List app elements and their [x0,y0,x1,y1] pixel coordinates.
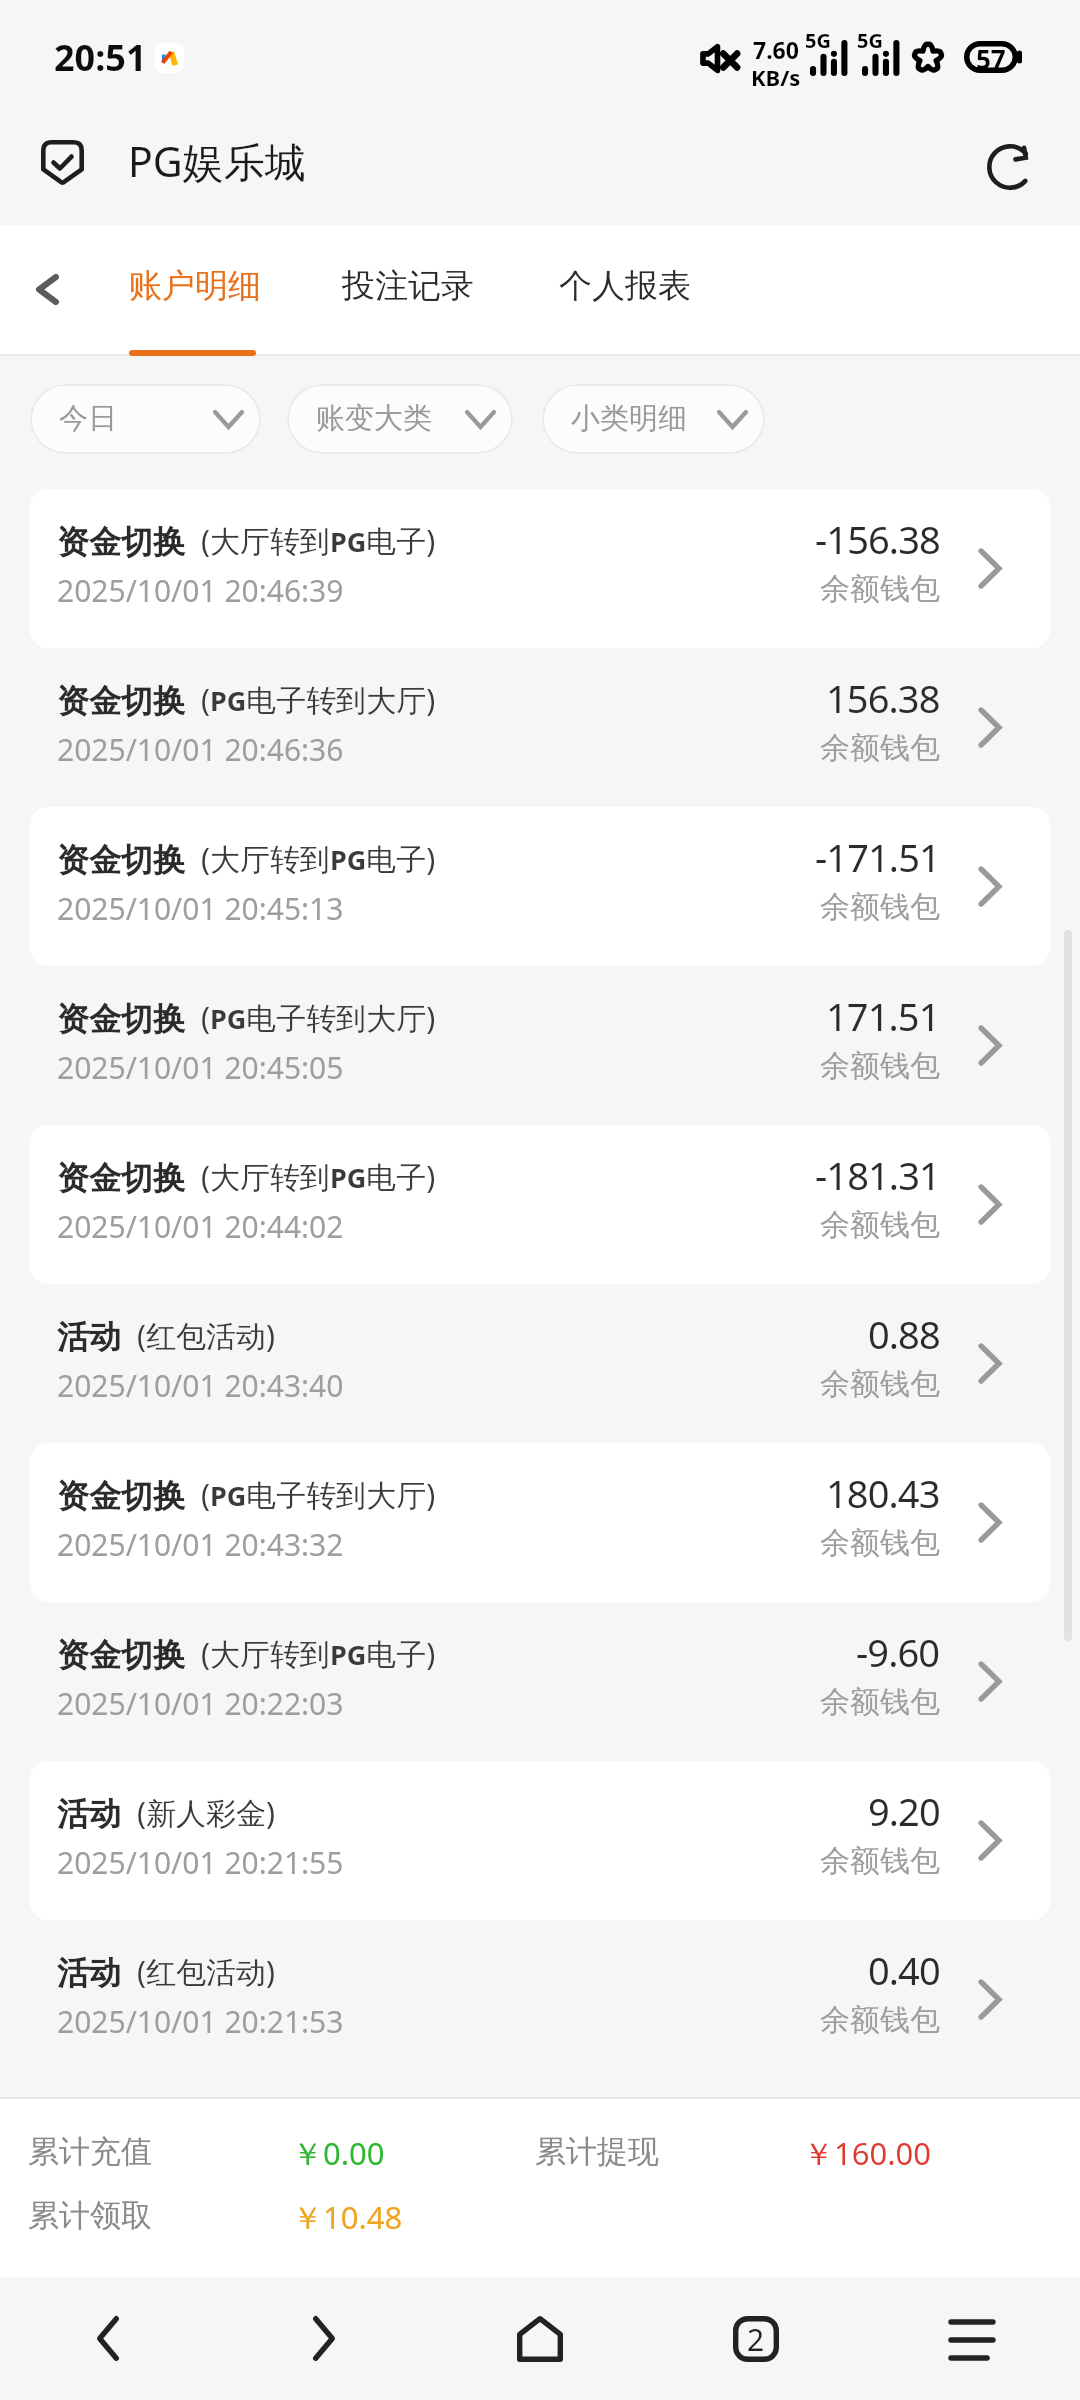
staticText: (新人彩金) [137,1792,275,1833]
staticText: (红包活动) [137,1315,275,1356]
staticText: 余额钱包 [820,888,940,926]
staticText: 2025/10/01 20:43:40 [57,1365,344,1406]
staticText: 余额钱包 [820,1683,940,1721]
staticText: 20:51 [54,33,147,82]
staticText: 活动 [57,1953,121,1993]
button[interactable]: 账变大类 [287,384,513,454]
staticText: 资金切换 [57,522,185,562]
staticText: 累计提现 [535,2132,659,2171]
button[interactable]: Home [432,2277,648,2400]
button[interactable]: 资金切换 [30,648,1050,807]
staticText: 2025/10/01 20:21:55 [57,1842,344,1883]
staticText: 资金切换 [57,681,185,721]
staticText: (PG电子转到大厅) [201,1474,436,1515]
staticText: 5G [857,27,883,54]
button[interactable]: Forward [216,2277,432,2400]
staticText: 资金切换 [57,840,185,880]
staticText: 活动 [57,1794,121,1834]
staticText: 180.43 [826,1467,940,1519]
staticText: 156.38 [826,672,940,724]
staticText: 活动 [57,1317,121,1357]
button[interactable]: 个人报表 [559,225,699,351]
staticText: 投注记录 [342,265,474,307]
staticText: 资金切换 [57,1635,185,1675]
button[interactable]: 活动 [30,1761,1050,1920]
staticText: 2025/10/01 20:46:39 [57,570,344,611]
staticText: ￥160.00 [803,2132,931,2174]
staticText: (大厅转到PG电子) [201,1156,436,1197]
staticText: 2025/10/01 20:44:02 [57,1206,344,1247]
button[interactable]: 资金切换 [30,1443,1050,1602]
staticText: (PG电子转到大厅) [201,679,436,720]
button[interactable]: 投注记录 [342,225,482,351]
staticText: (大厅转到PG电子) [201,1633,436,1674]
staticText: -9.60 [856,1626,940,1678]
staticText: (PG电子转到大厅) [201,997,436,1038]
button[interactable]: 账户明细 [129,225,269,351]
staticText: -171.51 [815,831,940,883]
staticText: 余额钱包 [820,1206,940,1244]
staticText: (红包活动) [137,1951,275,1992]
staticText: 0.40 [868,1944,940,1996]
staticText: ￥0.00 [292,2132,385,2174]
staticText: 0.88 [868,1308,940,1360]
staticText: 余额钱包 [820,570,940,608]
button[interactable]: Refresh [972,129,1048,205]
staticText: 资金切换 [57,1158,185,1198]
button[interactable]: 活动 [30,1920,1050,2079]
staticText: 2025/10/01 20:22:03 [57,1683,344,1724]
staticText: 2025/10/01 20:45:05 [57,1047,344,1088]
staticText: 余额钱包 [820,1047,940,1085]
button[interactable]: Back [11,253,83,325]
staticText: 7.60 [753,34,799,65]
staticText: -156.38 [815,513,940,565]
button[interactable]: 资金切换 [30,966,1050,1125]
staticText: (大厅转到PG电子) [201,520,436,561]
staticText: 2 [747,2319,765,2360]
button[interactable]: 小类明细 [542,384,765,454]
button[interactable]: 今日 [30,384,261,454]
staticText: 累计充值 [28,2132,152,2171]
staticText: 余额钱包 [820,1524,940,1562]
staticText: 171.51 [826,990,940,1042]
staticText: 2025/10/01 20:46:36 [57,729,344,770]
staticText: 资金切换 [57,999,185,1039]
staticText: PG娱乐城 [128,133,306,189]
button[interactable]: 资金切换 [30,1125,1050,1284]
button[interactable]: Tabs [648,2277,864,2400]
staticText: 账户明细 [129,265,261,307]
staticText: 2025/10/01 20:43:32 [57,1524,344,1565]
button[interactable]: 活动 [30,1284,1050,1443]
staticText: 个人报表 [559,265,691,307]
staticText: 2025/10/01 20:45:13 [57,888,344,929]
staticText: 9.20 [868,1785,940,1837]
staticText: 余额钱包 [820,2001,940,2039]
staticText: -181.31 [815,1149,940,1201]
staticText: 账变大类 [316,400,432,437]
staticText: 余额钱包 [820,1365,940,1403]
button[interactable]: 资金切换 [30,1602,1050,1761]
staticText: 累计领取 [28,2196,152,2235]
staticText: 2025/10/01 20:21:53 [57,2001,344,2042]
staticText: 小类明细 [571,400,687,437]
staticText: 5G [805,27,831,54]
staticText: 资金切换 [57,1476,185,1516]
staticText: 余额钱包 [820,729,940,767]
staticText: (大厅转到PG电子) [201,838,436,879]
button[interactable]: Back [0,2277,216,2400]
button[interactable]: 资金切换 [30,807,1050,966]
staticText: KB/s [751,62,801,92]
button[interactable]: Menu [864,2277,1080,2400]
button[interactable]: 资金切换 [30,489,1050,648]
staticText: 今日 [59,400,117,437]
staticText: 57 [976,41,1006,73]
staticText: 余额钱包 [820,1842,940,1880]
staticText: ￥10.48 [292,2196,403,2238]
